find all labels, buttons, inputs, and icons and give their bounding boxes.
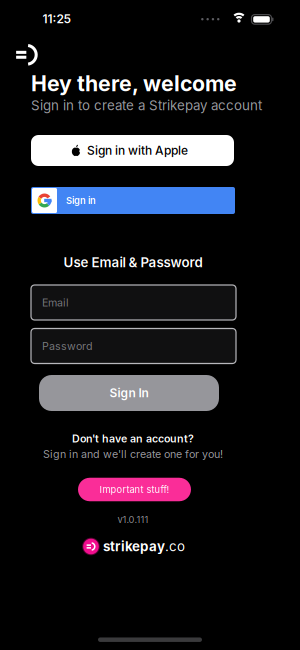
staticText: Important stuff! [99,484,169,495]
button[interactable]: Email [31,285,236,320]
staticText: Sign In [109,386,148,400]
staticText: Don't have an account? [72,432,194,445]
staticText: Use Email & Password [63,255,202,270]
staticText: Password [42,340,93,352]
button[interactable]: Sign In [39,375,219,411]
staticText: .co [165,539,185,554]
button[interactable]: Important stuff! [78,478,191,501]
button[interactable]: Sign in with Apple [31,135,234,166]
staticText: Sign in [66,195,96,206]
staticText: Sign in with Apple [87,143,188,158]
staticText: Sign in and we'll create one for you! [43,448,223,460]
staticText: 11:25 [42,12,71,26]
staticText: Email [42,296,69,309]
button[interactable]: Sign in [31,187,235,214]
staticText: Sign in to create a Strikepay account [31,98,262,113]
button[interactable]: Password [31,328,236,363]
staticText: strikepay [103,539,165,554]
staticText: Hey there, welcome [31,71,237,96]
staticText: v1.0.111 [117,514,148,525]
